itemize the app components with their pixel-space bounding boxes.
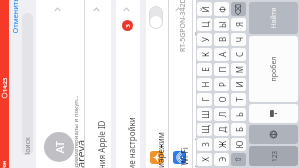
staticText: Alina Tokareva (72, 139, 87, 168)
staticText: Й (199, 2, 210, 16)
button[interactable]: Ж (214, 138, 229, 151)
staticText: С (233, 48, 244, 61)
staticText: Ч (233, 33, 244, 46)
button[interactable]: Отменить (9, 0, 21, 168)
staticText: Ы (216, 18, 227, 31)
button[interactable]: Bluetooth (193, 0, 196, 168)
button[interactable]: Удалить (231, 2, 246, 16)
button[interactable]: Авиарежим (149, 6, 163, 29)
button[interactable]: Э (214, 153, 229, 166)
button[interactable]: Й (197, 2, 212, 16)
staticText: ⇧ (233, 153, 242, 166)
staticText: МегаФон (1, 161, 8, 168)
staticText: 3 (123, 20, 131, 31)
staticText: Т (233, 93, 244, 106)
staticText: Ж (216, 138, 227, 151)
button[interactable]: Е (197, 63, 212, 76)
staticText: пробел (269, 39, 279, 99)
button[interactable]: Смена языка (249, 125, 298, 144)
staticText: ⌫ (233, 2, 242, 16)
staticText: Н (199, 78, 210, 91)
staticText: Д (216, 123, 227, 136)
button[interactable]: Д (214, 123, 229, 136)
staticText: Э (216, 153, 227, 166)
button[interactable]: Н (197, 78, 212, 91)
button[interactable]: Ф (214, 2, 229, 16)
button[interactable]: И (231, 78, 246, 91)
staticText: Б (233, 123, 244, 136)
button[interactable]: Ы (214, 18, 229, 31)
staticText: М (233, 63, 244, 76)
staticText: Л (216, 108, 227, 121)
staticText: 14:23 (1, 77, 8, 92)
staticText: З (199, 138, 210, 151)
button[interactable]: Найти (249, 2, 298, 34)
button[interactable]: Wi-Fi (169, 0, 192, 168)
button[interactable]: АТ (36, 0, 84, 168)
button[interactable]: Предложения Apple ID (85, 0, 111, 168)
staticText: К (199, 48, 210, 61)
button[interactable]: Ш (197, 108, 212, 121)
button[interactable]: Л (214, 108, 229, 121)
staticText: Apple ID, iCloud, медиаматериалы и покуп… (71, 94, 79, 168)
staticText: Ц (199, 18, 210, 31)
button[interactable]: Р (214, 78, 229, 91)
button[interactable]: Завершение настройки (116, 0, 140, 168)
button[interactable]: Ц (197, 18, 212, 31)
staticText: А (216, 48, 227, 61)
button[interactable]: Х (197, 153, 212, 166)
staticText: Вкл. (193, 21, 203, 36)
button[interactable]: П (214, 63, 229, 76)
staticText: Х (199, 153, 210, 166)
button[interactable]: В (214, 33, 229, 46)
button[interactable]: Ч (231, 33, 246, 46)
staticText: Bluetooth (192, 134, 203, 168)
staticText: Предложения Apple ID (96, 120, 107, 168)
staticText: 123 (269, 146, 278, 166)
staticText: Р (216, 78, 227, 91)
button[interactable]: Поиск (22, 13, 33, 155)
button[interactable]: Т (231, 93, 246, 106)
staticText: Wi-Fi (178, 146, 189, 165)
button[interactable]: 123 (249, 146, 298, 166)
staticText: У (199, 33, 210, 46)
button[interactable]: М (231, 63, 246, 76)
button[interactable]: Скрыть клавиатуру (249, 104, 298, 123)
staticText: В (216, 33, 227, 46)
button[interactable]: С (231, 48, 246, 61)
button[interactable]: У (197, 33, 212, 46)
button[interactable]: А (214, 48, 229, 61)
button[interactable]: Авиарежим (146, 0, 168, 168)
button[interactable]: О (214, 93, 229, 106)
staticText: Ф (216, 2, 227, 16)
button[interactable]: Г (197, 93, 212, 106)
button[interactable]: Ю (231, 138, 246, 151)
staticText: Поиск (23, 137, 33, 155)
staticText: О (216, 93, 227, 106)
staticText: Отменить (9, 0, 19, 33)
staticText: Я (233, 18, 244, 31)
staticText: Ш (199, 108, 210, 121)
staticText: Щ (199, 123, 210, 136)
staticText: Авиарежим (154, 131, 165, 168)
staticText: RT-5GPON-342D (178, 0, 188, 52)
button[interactable]: К (197, 48, 212, 61)
staticText: АТ (52, 132, 66, 162)
staticText: Ю (233, 138, 244, 151)
button[interactable]: З (197, 138, 212, 151)
staticText: Ь (233, 108, 244, 121)
staticText: Г (199, 93, 210, 106)
button[interactable]: Shift (231, 153, 246, 166)
staticText: Завершение настройки (126, 117, 137, 168)
button[interactable]: Я (231, 18, 246, 31)
button[interactable]: пробел (249, 36, 298, 102)
button[interactable]: Ь (231, 108, 246, 121)
staticText: И (233, 78, 244, 91)
staticText: П (216, 63, 227, 76)
button[interactable]: Б (231, 123, 246, 136)
staticText: Е (199, 63, 210, 76)
staticText: Найти (269, 2, 279, 34)
button[interactable]: Щ (197, 123, 212, 136)
